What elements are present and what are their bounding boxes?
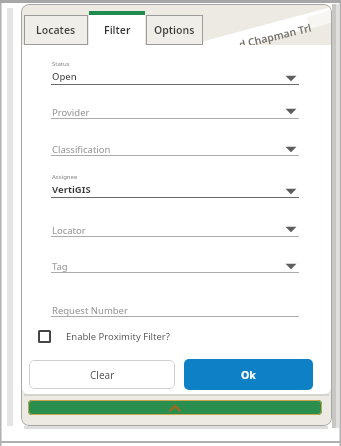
staticText: Ok	[241, 368, 256, 382]
staticText: Enable Proximity Filter?	[66, 330, 170, 343]
button[interactable]: Clear	[29, 360, 175, 389]
button[interactable]: Locates	[24, 15, 88, 45]
button[interactable]: Options	[146, 15, 203, 45]
staticText: Filter	[104, 23, 131, 37]
button[interactable]	[51, 58, 299, 86]
staticText: Options	[154, 23, 195, 37]
button[interactable]	[51, 246, 299, 274]
button[interactable]	[51, 171, 299, 199]
button[interactable]	[51, 290, 299, 318]
button[interactable]	[51, 210, 299, 238]
button[interactable]: Ok	[184, 359, 313, 390]
staticText: Status	[52, 60, 70, 68]
button[interactable]: Enable Proximity Filter?	[38, 329, 170, 343]
staticText: Open	[52, 70, 77, 83]
button[interactable]	[51, 92, 299, 120]
staticText: d Chapman Trl	[237, 20, 314, 51]
staticText: Assignee	[52, 173, 78, 181]
staticText: VertiGIS	[52, 183, 91, 196]
staticText: Locator	[52, 224, 86, 237]
staticText: Tag	[52, 260, 68, 273]
staticText: Locates	[36, 23, 76, 37]
button[interactable]	[51, 129, 299, 157]
staticText: Clear	[90, 368, 115, 382]
button[interactable]	[28, 400, 322, 415]
staticText: Provider	[52, 106, 90, 119]
staticText: Classification	[52, 143, 111, 156]
button[interactable]: Filter	[89, 11, 145, 45]
staticText: Request Number	[52, 304, 128, 317]
